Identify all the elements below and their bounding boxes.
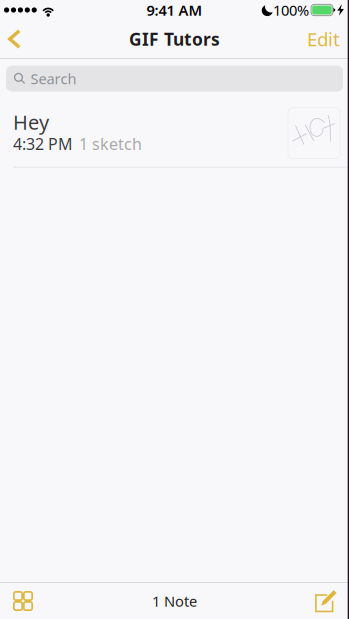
button[interactable]: Search <box>6 66 343 92</box>
button[interactable]: Gallery view <box>1 583 45 619</box>
staticText: Hey <box>13 109 49 135</box>
staticText: 9:41 AM <box>146 0 202 20</box>
staticText: 1 Note <box>152 591 197 611</box>
staticText: Search <box>30 69 76 88</box>
button[interactable]: Hey <box>0 98 349 168</box>
button[interactable]: Edit <box>291 20 349 58</box>
button[interactable]: Back <box>0 20 37 58</box>
staticText: GIF Tutors <box>129 27 220 50</box>
button[interactable]: New note <box>304 583 348 619</box>
staticText: 100% <box>273 0 309 20</box>
staticText: 1 sketch <box>79 133 142 154</box>
staticText: 4:32 PM <box>13 133 73 154</box>
staticText: Edit <box>307 27 340 51</box>
